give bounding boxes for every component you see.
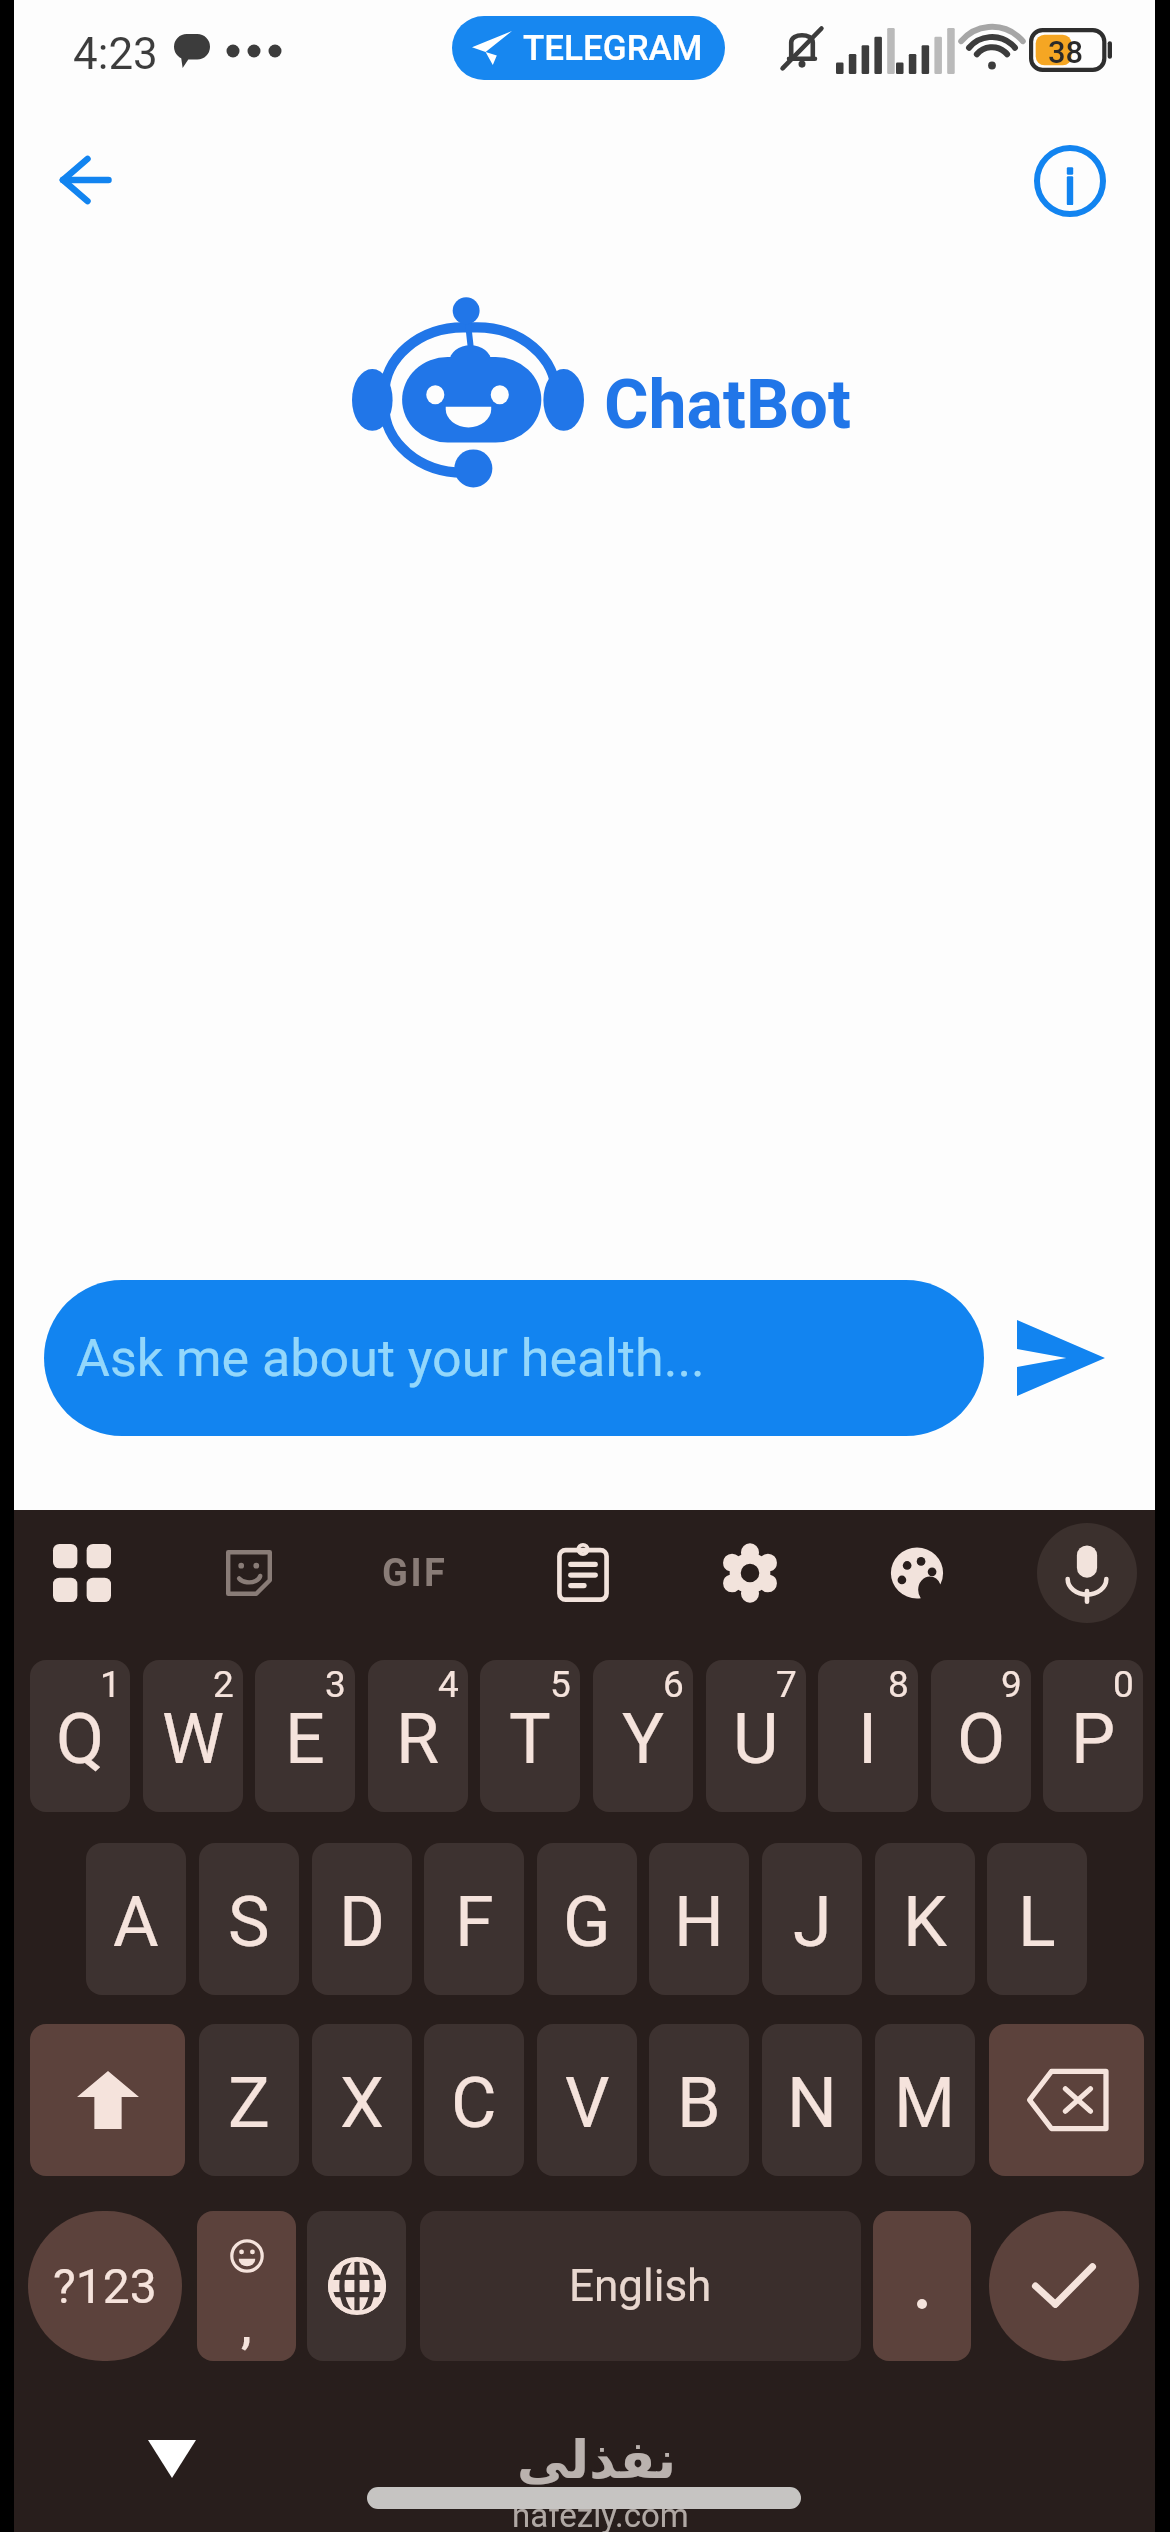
button[interactable]: ?123 <box>28 2211 182 2361</box>
staticText: W <box>162 1698 225 1780</box>
button[interactable]: Q <box>30 1660 130 1812</box>
staticText: 2 <box>213 1663 234 1706</box>
button[interactable]: Language <box>307 2211 406 2361</box>
staticText: K <box>903 1881 947 1963</box>
staticText: 7 <box>776 1663 797 1706</box>
button[interactable]: I <box>818 1660 918 1812</box>
staticText: T <box>509 1698 551 1780</box>
staticText: 4:23 <box>73 28 158 80</box>
staticText: TELEGRAM <box>523 28 703 69</box>
staticText: R <box>396 1698 440 1780</box>
staticText: 5 <box>550 1663 571 1706</box>
staticText: X <box>340 2062 384 2144</box>
button[interactable]: Period <box>873 2211 971 2361</box>
staticText: Y <box>622 1698 665 1780</box>
button[interactable]: D <box>312 1843 412 1995</box>
staticText: G <box>563 1881 611 1963</box>
button[interactable]: Clipboard <box>527 1517 639 1629</box>
button[interactable]: J <box>762 1843 862 1995</box>
staticText: F <box>455 1881 494 1963</box>
button[interactable]: W <box>143 1660 243 1812</box>
staticText: U <box>733 1698 779 1780</box>
button[interactable]: Emoji <box>197 2211 296 2361</box>
staticText: I <box>858 1698 878 1780</box>
staticText: V <box>565 2062 610 2144</box>
button[interactable]: GIF <box>359 1517 471 1629</box>
staticText: B <box>677 2062 721 2144</box>
button[interactable]: G <box>537 1843 637 1995</box>
button[interactable]: S <box>199 1843 299 1995</box>
staticText: S <box>228 1881 270 1963</box>
button[interactable]: Ask me about your health... <box>44 1280 984 1436</box>
button[interactable]: M <box>875 2024 975 2176</box>
button[interactable]: Space <box>420 2211 861 2361</box>
button[interactable]: K <box>875 1843 975 1995</box>
button[interactable]: U <box>706 1660 806 1812</box>
staticText: nafezly.com <box>512 2496 689 2532</box>
button[interactable]: Backspace <box>989 2024 1144 2176</box>
button[interactable]: E <box>255 1660 355 1812</box>
button[interactable]: Themes <box>861 1517 973 1629</box>
staticText: ChatBot <box>604 365 851 445</box>
staticText: C <box>451 2062 497 2144</box>
button[interactable]: F <box>424 1843 524 1995</box>
button[interactable]: Shift <box>30 2024 185 2176</box>
button[interactable]: H <box>649 1843 749 1995</box>
button[interactable]: Hide keyboard <box>144 2436 200 2482</box>
button[interactable]: Settings <box>694 1517 806 1629</box>
button[interactable]: Z <box>199 2024 299 2176</box>
button[interactable]: V <box>537 2024 637 2176</box>
staticText: 6 <box>663 1663 684 1706</box>
staticText: نفذلي <box>517 2430 677 2491</box>
staticText: 8 <box>888 1663 909 1706</box>
staticText: M <box>894 2062 956 2144</box>
staticText: 4 <box>438 1663 459 1706</box>
staticText: H <box>674 1881 724 1963</box>
staticText: J <box>793 1881 832 1963</box>
staticText: , <box>241 2301 252 2353</box>
button[interactable]: X <box>312 2024 412 2176</box>
staticText: Ask me about your health... <box>76 1328 705 1389</box>
staticText: 3 <box>325 1663 346 1706</box>
staticText: P <box>1071 1698 1116 1780</box>
button[interactable]: L <box>987 1843 1087 1995</box>
button[interactable]: Back <box>23 118 147 242</box>
staticText: Z <box>228 2062 270 2144</box>
staticText: O <box>957 1698 1006 1780</box>
staticText: A <box>113 1881 159 1963</box>
staticText: L <box>1018 1881 1056 1963</box>
staticText: 0 <box>1113 1663 1134 1706</box>
staticText: GIF <box>382 1551 448 1596</box>
staticText: ?123 <box>53 2258 157 2314</box>
button[interactable]: N <box>762 2024 862 2176</box>
staticText: 9 <box>1001 1663 1022 1706</box>
staticText: D <box>339 1881 385 1963</box>
staticText: 1 <box>100 1663 121 1706</box>
button[interactable]: Enter <box>989 2211 1139 2361</box>
button[interactable]: Stickers <box>193 1517 305 1629</box>
staticText: Q <box>56 1698 105 1780</box>
button[interactable]: R <box>368 1660 468 1812</box>
staticText: 38 <box>1048 34 1084 70</box>
button[interactable]: Apps <box>26 1517 138 1629</box>
button[interactable]: C <box>424 2024 524 2176</box>
button[interactable]: B <box>649 2024 749 2176</box>
button[interactable]: Send <box>1006 1305 1116 1411</box>
staticText: E <box>285 1698 325 1780</box>
button[interactable]: Info <box>1008 119 1132 243</box>
button[interactable]: P <box>1043 1660 1143 1812</box>
button[interactable]: A <box>86 1843 186 1995</box>
button[interactable]: T <box>480 1660 580 1812</box>
staticText: English <box>569 2260 712 2312</box>
button[interactable]: Voice input <box>1037 1523 1137 1623</box>
staticText: N <box>787 2062 837 2144</box>
button[interactable]: O <box>931 1660 1031 1812</box>
button[interactable]: Y <box>593 1660 693 1812</box>
